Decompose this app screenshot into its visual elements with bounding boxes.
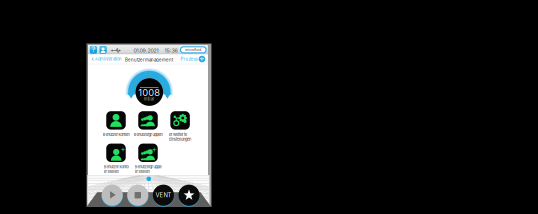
button[interactable]: Prozess <box>180 54 205 64</box>
button[interactable]: Erweiterte Einstellungen <box>165 111 195 140</box>
button[interactable]: Help <box>90 46 97 54</box>
staticText: ? <box>91 45 95 54</box>
button[interactable]: ‹ <box>88 54 121 64</box>
button[interactable]: Current user <box>99 46 107 54</box>
staticText: Benutzermanagement <box>125 57 173 62</box>
staticText: microfluid <box>185 48 201 52</box>
button[interactable]: Start <box>102 184 123 206</box>
staticText: Erweiterte Einstellungen <box>169 132 191 142</box>
button[interactable]: Benutzerkonto erstellen <box>101 143 131 172</box>
staticText: ‹ <box>91 55 94 63</box>
staticText: 1008 <box>138 87 160 98</box>
button[interactable]: Vent <box>153 184 174 206</box>
staticText: mbar <box>144 96 155 101</box>
staticText: Prozess <box>180 56 197 62</box>
button[interactable]: Benutzerkonten <box>101 111 131 140</box>
staticText: VENT <box>155 192 171 199</box>
button[interactable]: Benutzergruppe erstellen <box>133 143 163 172</box>
staticText: Benutzergruppe erstellen <box>134 164 161 174</box>
staticText: Benutzerkonten <box>102 132 129 137</box>
staticText: Benutzerkonto erstellen <box>103 164 128 174</box>
button[interactable]: Benutzergruppen <box>133 111 163 140</box>
button[interactable]: Stop <box>127 184 148 206</box>
staticText: Administration <box>95 57 121 61</box>
staticText: Benutzergruppen <box>133 132 162 137</box>
staticText: 01.09.2021 15:36 <box>133 47 177 54</box>
button[interactable]: Favourite <box>178 184 200 206</box>
